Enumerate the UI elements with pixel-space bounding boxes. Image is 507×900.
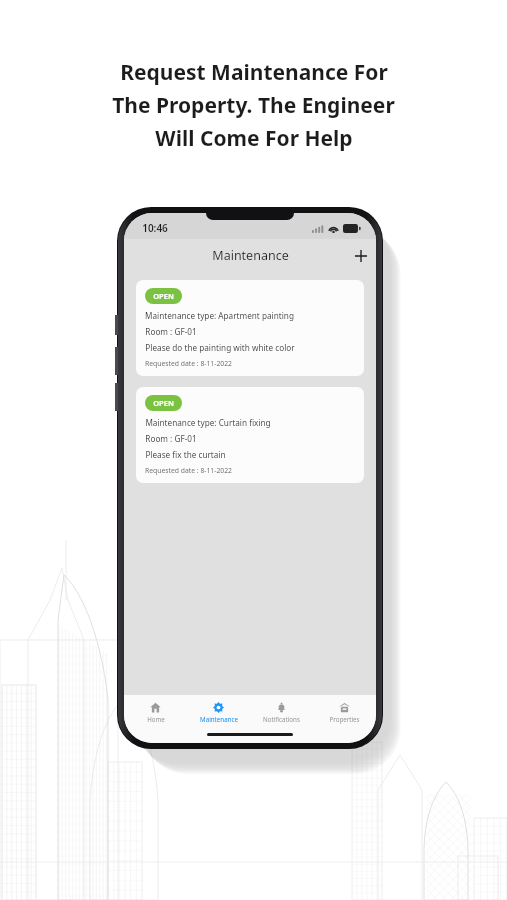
staticText: Please do the painting with white color <box>145 342 295 353</box>
staticText: Request Maintenance For <box>120 58 388 87</box>
button[interactable]: Properties <box>313 700 376 725</box>
button[interactable]: OPEN <box>136 280 364 376</box>
staticText: The Property. The Engineer <box>112 91 395 120</box>
staticText: Requested date : 8-11-2022 <box>145 466 232 475</box>
button[interactable]: Notifications <box>250 700 313 725</box>
staticText: Room : GF-01 <box>145 433 197 444</box>
staticText: OPEN <box>153 291 174 301</box>
button[interactable]: Home <box>124 700 187 725</box>
staticText: OPEN <box>153 398 174 408</box>
staticText: Please fix the curtain <box>145 449 226 460</box>
staticText: Maintenance <box>212 247 289 264</box>
staticText: Properties <box>329 715 360 723</box>
staticText: Will Come For Help <box>155 124 353 153</box>
staticText: Maintenance type: Apartment painting <box>145 310 294 321</box>
staticText: 10:46 <box>142 221 168 235</box>
button[interactable]: Maintenance <box>187 700 250 725</box>
button[interactable]: Add maintenance request <box>346 241 376 271</box>
button[interactable]: OPEN <box>136 387 364 483</box>
staticText: Room : GF-01 <box>145 326 197 337</box>
staticText: Requested date : 8-11-2022 <box>145 359 232 368</box>
staticText: Maintenance <box>200 715 238 723</box>
staticText: Home <box>147 715 165 723</box>
staticText: Notifications <box>263 715 300 723</box>
staticText: Maintenance type: Curtain fixing <box>145 417 271 428</box>
